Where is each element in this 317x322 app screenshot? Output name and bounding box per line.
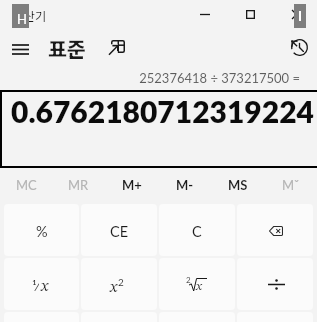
- button[interactable]: Mˇ: [264, 170, 317, 200]
- button[interactable]: Close: [278, 0, 315, 28]
- button[interactable]: Minimize: [186, 0, 223, 28]
- button[interactable]: Keep on top: [100, 28, 136, 66]
- button[interactable]: Backspace: [237, 204, 313, 256]
- staticText: 252376418 ÷ 373217500 =: [0, 70, 300, 86]
- staticText: CE: [110, 223, 129, 240]
- button[interactable]: Menu: [0, 28, 40, 66]
- button[interactable]: One divided by x: [4, 258, 79, 310]
- button[interactable]: MR: [52, 170, 105, 200]
- button[interactable]: Square: [81, 258, 157, 310]
- staticText: MS: [228, 177, 248, 193]
- button[interactable]: MS: [211, 170, 264, 200]
- staticText: 2: [118, 276, 124, 288]
- button[interactable]: Square root: [159, 258, 235, 310]
- button[interactable]: Maximize: [232, 0, 269, 28]
- button[interactable]: C: [159, 204, 235, 256]
- staticText: 2: [186, 275, 191, 285]
- button[interactable]: M+: [105, 170, 158, 200]
- staticText: x: [41, 279, 49, 295]
- button[interactable]: History: [281, 28, 317, 66]
- staticText: M-: [176, 177, 194, 193]
- staticText: 표준: [48, 33, 86, 63]
- staticText: 계산기: [13, 7, 47, 24]
- staticText: %: [36, 223, 48, 240]
- staticText: H: [17, 11, 27, 27]
- button[interactable]: %: [4, 204, 79, 256]
- staticText: ¹⁄: [32, 277, 39, 293]
- staticText: C: [192, 223, 202, 240]
- staticText: 0.6762180712319224: [11, 93, 314, 129]
- button[interactable]: CE: [81, 204, 157, 256]
- button[interactable]: MC: [0, 170, 52, 200]
- staticText: x: [196, 280, 202, 293]
- staticText: MR: [68, 177, 89, 193]
- staticText: M+: [122, 177, 142, 193]
- staticText: MC: [16, 177, 37, 193]
- button[interactable]: Divide: [237, 258, 313, 310]
- button[interactable]: M-: [158, 170, 211, 200]
- staticText: Mˇ: [282, 177, 300, 193]
- staticText: x: [110, 280, 118, 296]
